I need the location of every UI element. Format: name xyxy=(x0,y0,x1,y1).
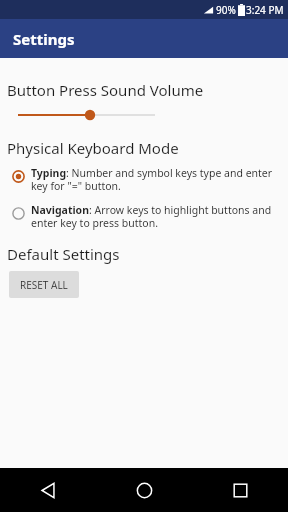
button[interactable]: Navigation: Arrow keys to highlight butt… xyxy=(0,199,288,232)
button[interactable]: RESET ALL xyxy=(9,271,79,298)
staticText: Physical Keyboard Mode xyxy=(7,138,179,158)
staticText: 3:24 PM xyxy=(246,3,284,17)
staticText: Button Press Sound Volume xyxy=(7,80,204,100)
button[interactable]: Back xyxy=(0,468,96,512)
staticText: Typing: Number and symbol keys type and … xyxy=(31,166,280,193)
staticText: Default Settings xyxy=(7,244,120,264)
staticText: Settings xyxy=(13,29,75,49)
button[interactable] xyxy=(0,106,288,124)
staticText: 90% xyxy=(216,3,236,17)
staticText: RESET ALL xyxy=(20,278,68,292)
button[interactable]: Recents xyxy=(192,468,288,512)
staticText: Navigation: Arrow keys to highlight butt… xyxy=(31,203,280,230)
button[interactable]: Typing: Number and symbol keys type and … xyxy=(0,162,288,195)
button[interactable]: Home xyxy=(96,468,192,512)
